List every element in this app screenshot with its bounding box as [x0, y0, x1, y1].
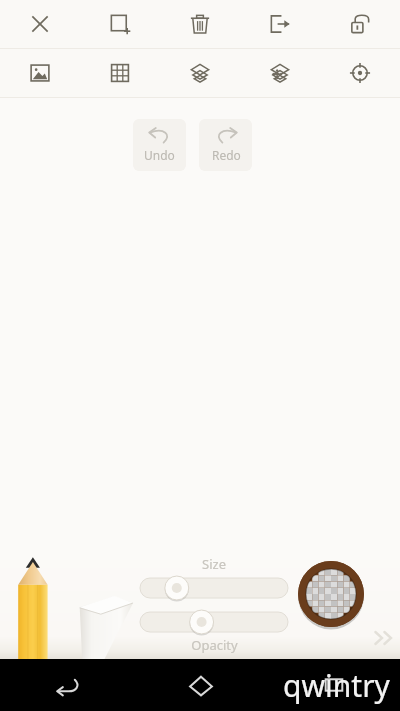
button[interactable]: Undo: [133, 119, 186, 171]
button[interactable]: Unlock: [320, 0, 400, 48]
button[interactable]: Eraser tool: [76, 589, 138, 659]
button[interactable]: [140, 575, 288, 601]
button[interactable]: Close: [0, 0, 80, 48]
button[interactable]: More tools: [370, 623, 400, 653]
button[interactable]: Layers: [160, 49, 240, 97]
staticText: Opacity: [191, 636, 238, 654]
staticText: Undo: [144, 147, 175, 163]
button[interactable]: Home: [134, 659, 267, 711]
staticText: Redo: [212, 147, 241, 163]
button[interactable]: Center: [320, 49, 400, 97]
button[interactable]: New canvas: [80, 0, 160, 48]
button[interactable]: Redo: [199, 119, 252, 171]
button[interactable]: [140, 609, 288, 635]
button[interactable]: Recents: [267, 659, 400, 711]
button[interactable]: Image: [0, 49, 80, 97]
button[interactable]: Back: [0, 659, 134, 711]
staticText: Size: [202, 555, 226, 573]
button[interactable]: Delete: [160, 0, 240, 48]
staticText: qwintry: [283, 665, 390, 706]
button[interactable]: Grid: [80, 49, 160, 97]
button[interactable]: Export: [240, 0, 320, 48]
button[interactable]: Pencil tool: [14, 553, 56, 659]
button[interactable]: Color picker: [296, 559, 366, 629]
button[interactable]: Move layer: [240, 49, 320, 97]
